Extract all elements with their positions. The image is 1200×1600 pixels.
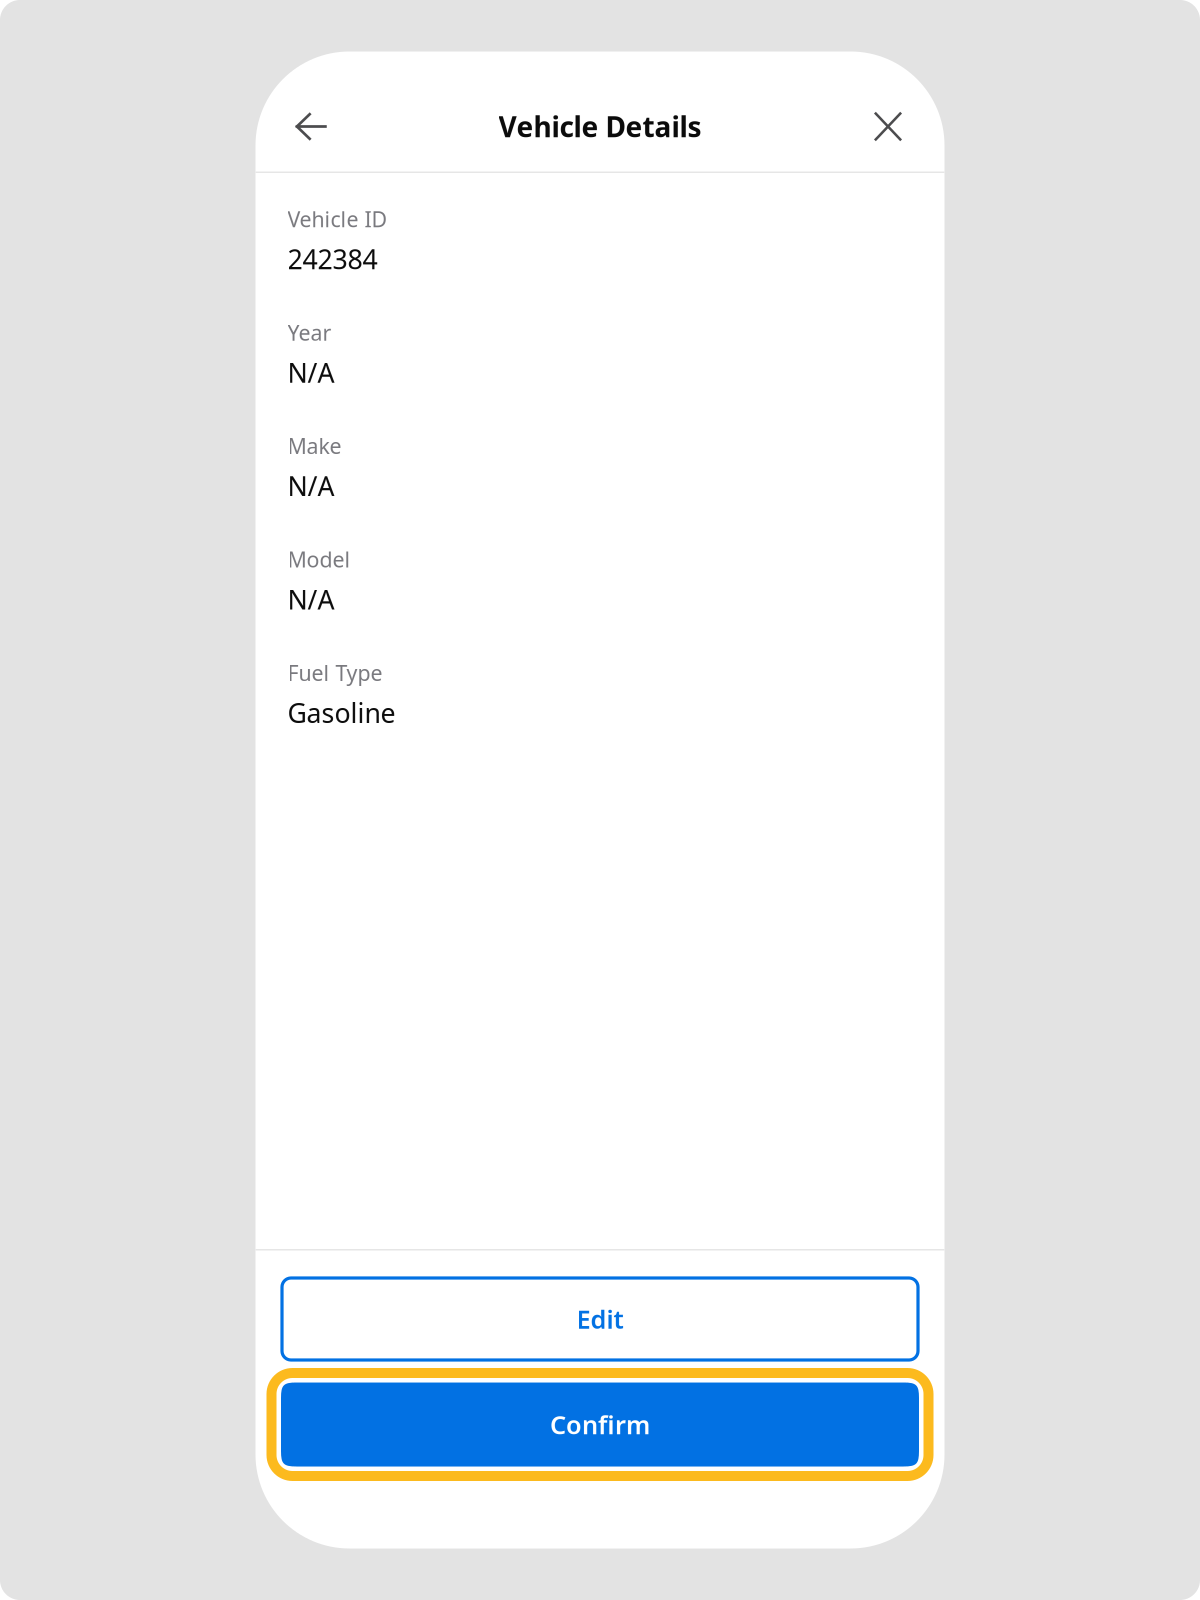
- staticText: N/A: [287, 581, 334, 617]
- staticText: 242384: [287, 241, 377, 277]
- staticText: Year: [287, 318, 331, 346]
- staticText: Make: [287, 432, 341, 460]
- staticText: Model: [287, 545, 350, 573]
- staticText: Confirm: [550, 1408, 650, 1441]
- button[interactable]: Confirm: [271, 1373, 928, 1476]
- staticText: N/A: [287, 355, 334, 390]
- button[interactable]: Back: [275, 90, 347, 162]
- staticText: Vehicle ID: [287, 205, 387, 233]
- staticText: Gasoline: [287, 695, 395, 730]
- button[interactable]: Edit: [282, 1278, 918, 1360]
- staticText: N/A: [287, 468, 334, 503]
- staticText: Edit: [576, 1302, 623, 1336]
- button[interactable]: Close: [852, 90, 924, 162]
- staticText: Fuel Type: [287, 658, 382, 687]
- staticText: Vehicle Details: [498, 108, 701, 145]
